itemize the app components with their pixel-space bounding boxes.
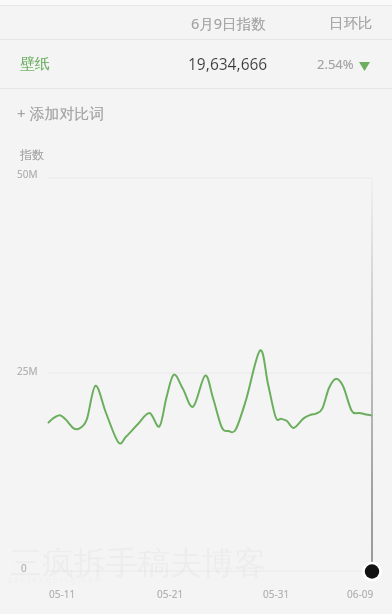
staticText: 2.54% xyxy=(317,55,354,73)
staticText: 6月9日指数 xyxy=(191,13,266,33)
staticText: 0 xyxy=(21,561,27,575)
staticText: 19,634,666 xyxy=(188,53,268,74)
staticText: 日环比 xyxy=(329,14,373,32)
staticText: 50M xyxy=(17,167,38,181)
staticText: 05-11 xyxy=(49,587,76,601)
button[interactable]: + 添加对比词 xyxy=(0,93,392,133)
staticText: 06-09 xyxy=(347,587,374,601)
staticText: 25M xyxy=(17,364,38,378)
staticText: 05-31 xyxy=(263,587,290,601)
staticText: 05-21 xyxy=(157,587,184,601)
button[interactable]: 壁纸 xyxy=(0,40,392,88)
staticText: 壁纸 xyxy=(20,55,50,74)
staticText: 指数 xyxy=(20,147,44,162)
staticText: 三疯拆手稿夫博客 xyxy=(10,543,266,583)
staticText: + 添加对比词 xyxy=(17,103,105,123)
